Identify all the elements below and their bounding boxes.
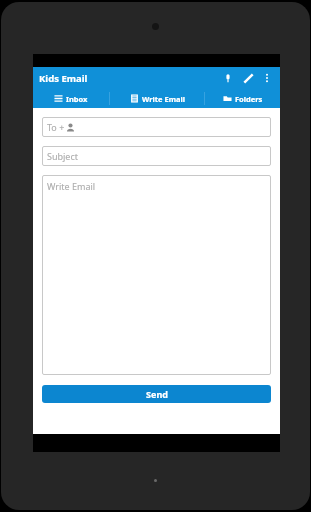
staticText: Subject (47, 150, 79, 162)
staticText: Kids Email (39, 72, 88, 85)
staticText: To + (47, 121, 65, 133)
staticText: Write Email (142, 94, 185, 104)
button[interactable]: Send (42, 385, 271, 403)
button[interactable]: Write Email (110, 89, 204, 108)
staticText: Send (146, 388, 168, 400)
button[interactable]: Inbox (33, 89, 109, 108)
staticText: Inbox (66, 94, 88, 104)
button[interactable]: Folders (205, 89, 280, 108)
button[interactable]: Compose (240, 70, 256, 86)
button[interactable]: Subject (42, 146, 271, 166)
button[interactable]: To + (42, 117, 271, 137)
button[interactable]: More options (259, 70, 275, 86)
staticText: Folders (235, 94, 263, 104)
button[interactable]: Attach (220, 70, 236, 86)
button[interactable]: Write Email (42, 175, 271, 375)
staticText: Write Email (47, 180, 96, 192)
